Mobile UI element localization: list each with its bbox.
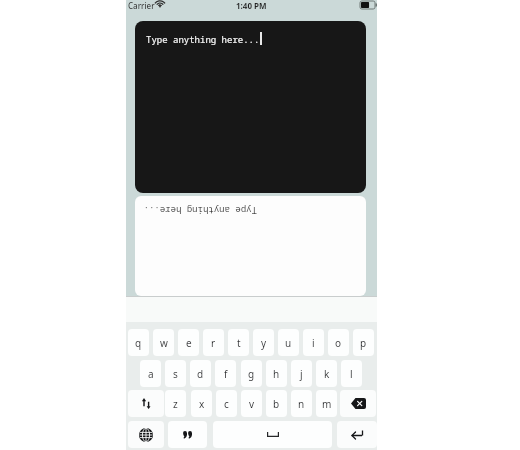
button[interactable]	[128, 390, 164, 417]
staticText: Type anything here...	[143, 205, 257, 217]
staticText: e	[186, 336, 192, 350]
button[interactable]: y	[253, 329, 274, 356]
staticText: f	[224, 367, 228, 381]
staticText: r	[211, 336, 216, 350]
button[interactable]: Type anything here...	[135, 196, 366, 296]
button[interactable]: u	[278, 329, 299, 356]
staticText: u	[285, 336, 292, 350]
staticText: j	[300, 367, 303, 381]
button[interactable]: t	[228, 329, 249, 356]
button[interactable]	[213, 421, 332, 448]
staticText: Carrier	[128, 0, 155, 11]
button[interactable]: s	[165, 360, 186, 387]
button[interactable]: p	[353, 329, 374, 356]
staticText: g	[248, 367, 255, 381]
button[interactable]: i	[303, 329, 324, 356]
staticText: k	[324, 367, 330, 381]
button[interactable]: m	[316, 390, 337, 417]
button[interactable]: f	[215, 360, 236, 387]
button[interactable]: c	[216, 390, 237, 417]
button[interactable]: n	[291, 390, 312, 417]
button[interactable]: v	[241, 390, 262, 417]
button[interactable]: d	[190, 360, 211, 387]
button[interactable]: x	[191, 390, 212, 417]
staticText: t	[237, 336, 241, 350]
staticText: s	[173, 367, 178, 381]
button[interactable]: j	[291, 360, 312, 387]
staticText: m	[322, 397, 332, 411]
button[interactable]	[168, 421, 207, 448]
staticText: p	[360, 336, 367, 350]
staticText: l	[350, 367, 353, 381]
button[interactable]: g	[241, 360, 262, 387]
button[interactable]: h	[266, 360, 287, 387]
button[interactable]	[128, 421, 164, 448]
staticText: v	[249, 397, 255, 411]
button[interactable]: l	[341, 360, 362, 387]
button[interactable]	[340, 390, 376, 417]
button[interactable]: k	[316, 360, 337, 387]
staticText: i	[312, 336, 315, 350]
button[interactable]: Type anything here...	[135, 21, 366, 193]
staticText: y	[261, 336, 267, 350]
staticText: o	[335, 336, 342, 350]
staticText: q	[135, 336, 142, 350]
staticText: w	[160, 336, 168, 350]
staticText: c	[224, 397, 229, 411]
staticText: a	[148, 367, 154, 381]
button[interactable]: a	[140, 360, 161, 387]
button[interactable]: b	[266, 390, 287, 417]
button[interactable]: w	[153, 329, 174, 356]
staticText: d	[197, 367, 204, 381]
staticText: Type anything here...	[146, 33, 260, 45]
staticText: x	[199, 397, 205, 411]
button[interactable]: z	[165, 390, 186, 417]
button[interactable]: q	[128, 329, 149, 356]
staticText: z	[173, 397, 178, 411]
button[interactable]: o	[328, 329, 349, 356]
staticText: b	[273, 397, 280, 411]
button[interactable]: e	[178, 329, 199, 356]
staticText: 1:40 PM	[236, 0, 267, 11]
button[interactable]: r	[203, 329, 224, 356]
staticText: n	[298, 397, 305, 411]
button[interactable]	[337, 421, 377, 448]
staticText: h	[273, 367, 280, 381]
